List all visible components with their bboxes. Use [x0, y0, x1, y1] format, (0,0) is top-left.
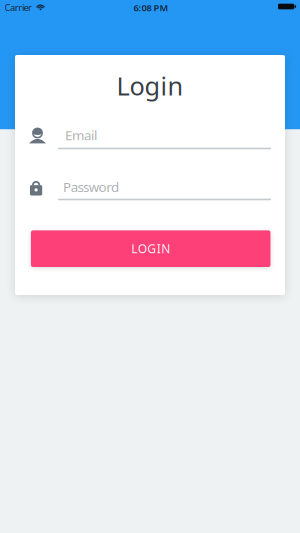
- staticText: Email: [65, 126, 97, 144]
- staticText: Login: [116, 69, 183, 102]
- staticText: LOGIN: [131, 241, 170, 257]
- staticText: Carrier: [4, 1, 32, 13]
- button[interactable]: Email: [15, 121, 285, 161]
- staticText: Password: [63, 178, 119, 196]
- staticText: 6:08 PM: [133, 1, 168, 14]
- button[interactable]: LOGIN: [31, 230, 270, 267]
- button[interactable]: Password: [15, 171, 285, 211]
